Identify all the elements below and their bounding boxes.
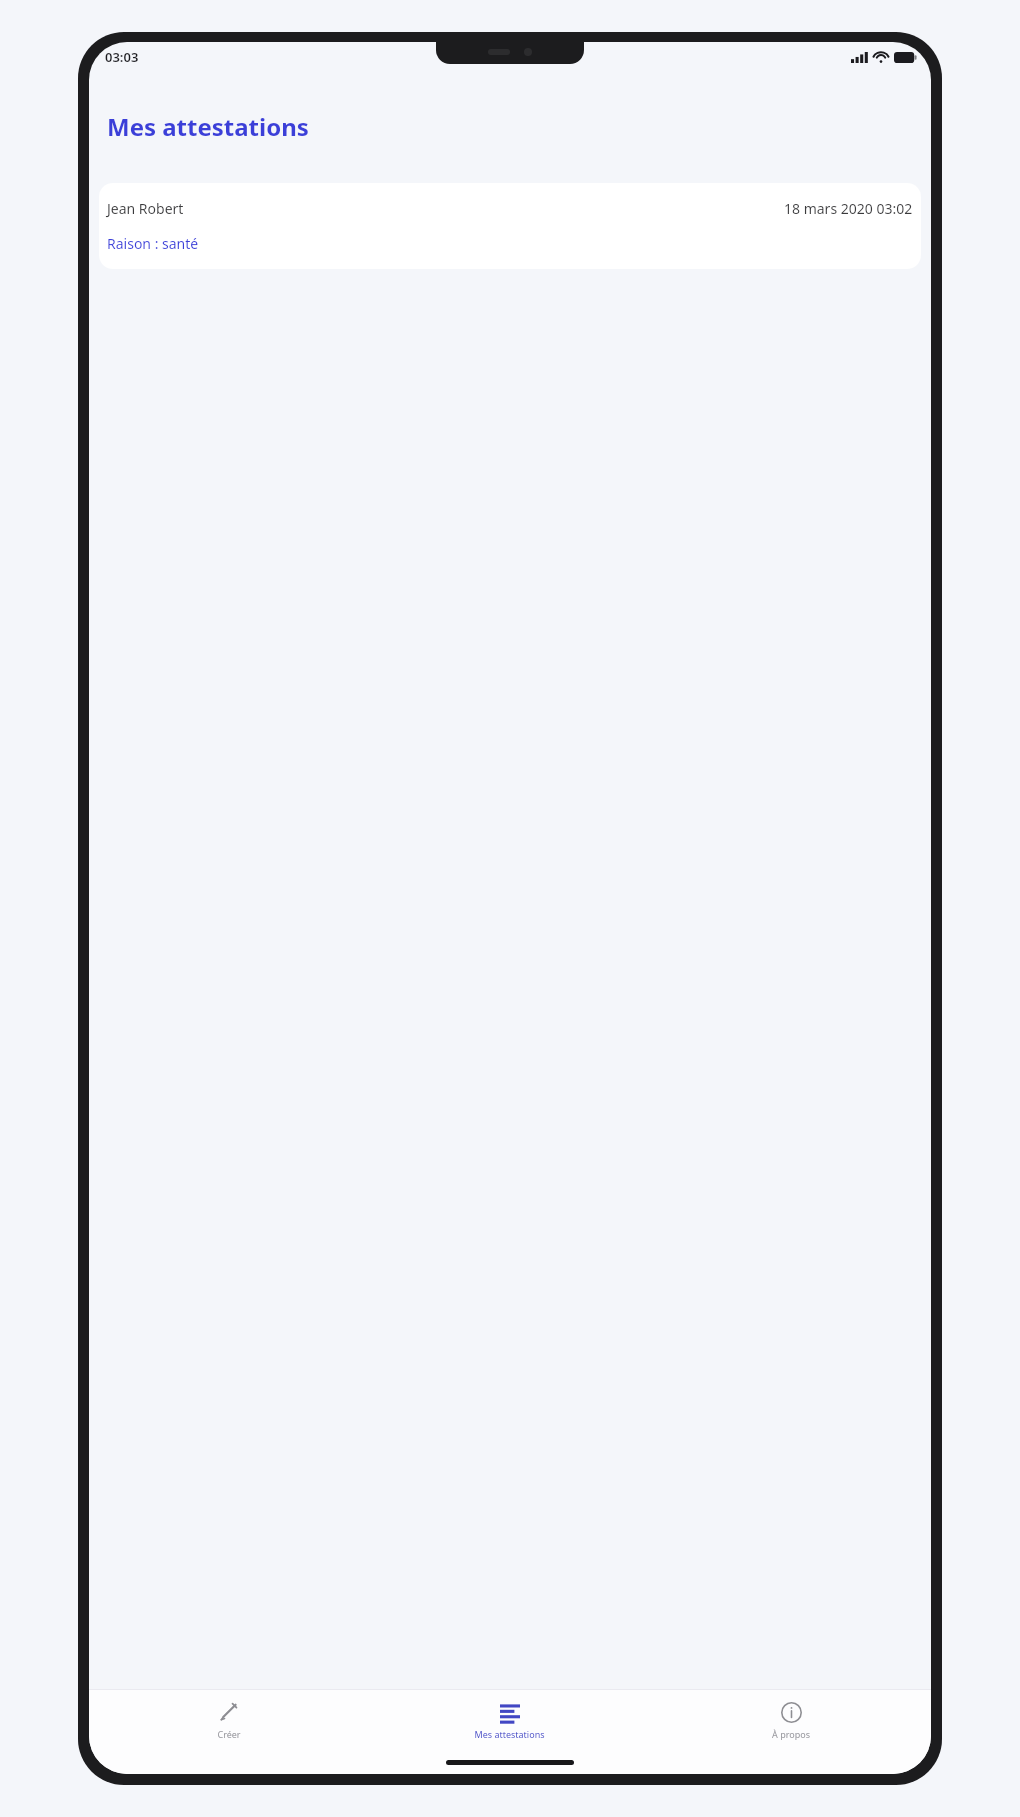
- staticText: 03:03: [105, 48, 139, 66]
- button[interactable]: Créer: [89, 1690, 369, 1750]
- staticText: Mes attestations: [107, 110, 309, 143]
- staticText: À propos: [772, 1728, 810, 1740]
- button[interactable]: Jean Robert: [99, 183, 921, 269]
- button[interactable]: À propos: [650, 1690, 931, 1750]
- staticText: Jean Robert: [107, 199, 184, 218]
- staticText: Créer: [217, 1728, 241, 1740]
- staticText: Raison : santé: [107, 234, 199, 253]
- staticText: Mes attestations: [474, 1728, 545, 1740]
- staticText: 18 mars 2020 03:02: [784, 199, 913, 218]
- button[interactable]: Mes attestations: [369, 1690, 650, 1750]
